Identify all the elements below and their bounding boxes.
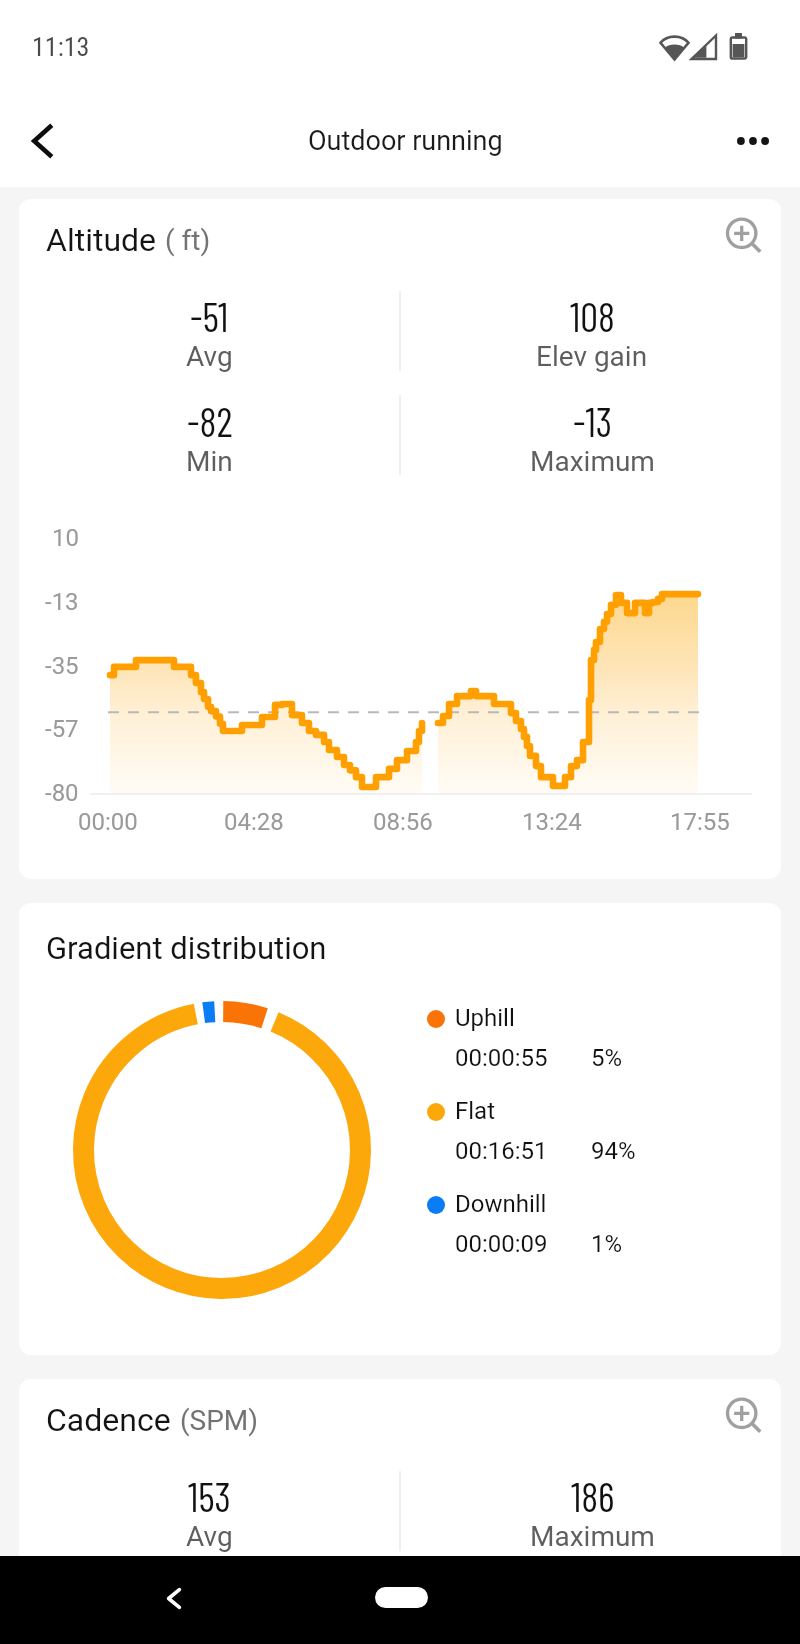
button[interactable]: Back (144, 1568, 204, 1628)
staticText: -13 (573, 397, 613, 445)
staticText: Avg (186, 340, 233, 373)
staticText: Gradient distribution (46, 930, 327, 966)
staticText: 04:28 (224, 808, 284, 836)
staticText: 94% (591, 1137, 636, 1165)
staticText: Outdoor running (308, 125, 503, 157)
staticText: 11:13 (32, 32, 90, 62)
button[interactable]: More options (716, 94, 800, 187)
staticText: Uphill (455, 1004, 515, 1032)
staticText: 00:16:51 (455, 1137, 548, 1165)
staticText: 1% (591, 1230, 623, 1258)
staticText: 00:00:55 (455, 1044, 548, 1072)
staticText: 10 (52, 524, 79, 552)
staticText: ( ft) (165, 224, 211, 257)
staticText: 108 (570, 292, 615, 340)
staticText: -57 (45, 715, 79, 743)
button[interactable]: Zoom in (700, 1379, 781, 1454)
staticText: Maximum (530, 445, 655, 478)
button[interactable]: Cadence card (19, 1379, 781, 1599)
staticText: Avg (186, 1520, 233, 1553)
staticText: -51 (190, 292, 229, 340)
staticText: 00:00 (78, 808, 138, 836)
staticText: -13 (45, 588, 79, 616)
button[interactable]: Gradient distribution card (19, 903, 781, 1355)
staticText: 17:55 (670, 808, 730, 836)
staticText: 186 (571, 1472, 615, 1520)
button[interactable]: Altitude chart card (19, 199, 781, 879)
staticText: 00:00:09 (455, 1230, 548, 1258)
staticText: Altitude (46, 221, 157, 259)
staticText: 13:24 (522, 808, 582, 836)
staticText: 5% (591, 1044, 623, 1072)
staticText: Cadence (46, 1401, 171, 1439)
staticText: Min (186, 445, 233, 478)
staticText: 153 (188, 1472, 231, 1520)
staticText: 08:56 (373, 808, 433, 836)
staticText: -80 (45, 779, 79, 807)
staticText: -82 (187, 397, 233, 445)
staticText: Downhill (455, 1190, 547, 1218)
button[interactable]: Zoom in (700, 199, 781, 274)
staticText: Elev gain (536, 340, 648, 373)
staticText: (SPM) (180, 1404, 259, 1437)
staticText: Flat (455, 1097, 496, 1125)
button[interactable]: Home (375, 1587, 428, 1608)
staticText: -35 (45, 652, 79, 680)
button[interactable]: Back (0, 94, 84, 187)
staticText: Maximum (530, 1520, 655, 1553)
